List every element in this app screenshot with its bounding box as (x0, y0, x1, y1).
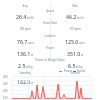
staticText: Standing (0, 71, 50, 75)
staticText: 200 (3, 89, 8, 93)
staticText: 148 bpm (0, 27, 50, 31)
staticText: 176 bpm (50, 27, 100, 31)
staticText: 100 (3, 96, 8, 100)
staticText: Power to Weight Ratio (0, 58, 100, 62)
staticText: 182.0 (17, 78, 31, 85)
staticText: Speed (76, 69, 85, 73)
staticText: w (31, 81, 34, 85)
staticText: 46.2 (66, 13, 77, 20)
staticText: 6.5 (68, 62, 76, 69)
staticText: rpm (28, 41, 34, 45)
staticText: Power (0, 46, 100, 50)
staticText: 26.4 (16, 13, 27, 20)
staticText: w/kg (26, 65, 33, 69)
staticText: 2.5 (18, 62, 26, 69)
staticText: 351.0 (67, 50, 81, 57)
staticText: 76.7 (17, 38, 28, 45)
staticText: Heart Rate (0, 21, 100, 25)
staticText: rpm (79, 41, 85, 45)
staticText: Cadence (0, 34, 100, 38)
staticText: km/h (77, 16, 84, 20)
staticText: 136.1 (17, 50, 31, 57)
staticText: 125.0 (65, 38, 79, 45)
staticText: Speed (0, 9, 100, 13)
staticText: 300 (3, 82, 8, 86)
staticText: km/h (27, 16, 34, 20)
staticText: 400 (3, 75, 8, 79)
staticText: Seated (50, 71, 100, 75)
staticText: w (31, 53, 34, 57)
staticText: Max (50, 4, 100, 8)
staticText: w/kg (76, 65, 83, 69)
staticText: w (81, 53, 84, 57)
staticText: Power (62, 69, 73, 73)
staticText: Avg (0, 4, 50, 8)
